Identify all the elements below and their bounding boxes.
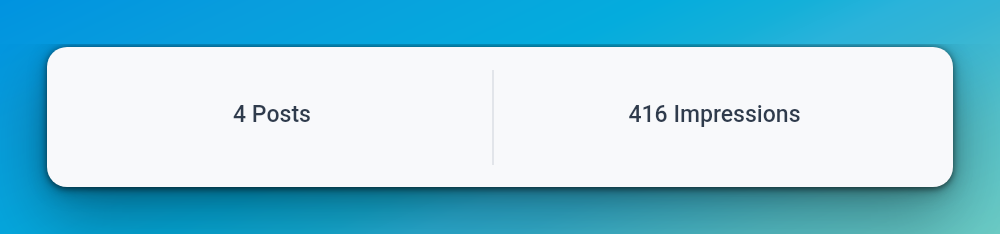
staticText: 416 Impressions [628,101,801,128]
staticText: 4 Posts [233,101,311,128]
button[interactable]: 416 Impressions [494,47,953,187]
button[interactable]: 4 Posts [47,47,492,187]
